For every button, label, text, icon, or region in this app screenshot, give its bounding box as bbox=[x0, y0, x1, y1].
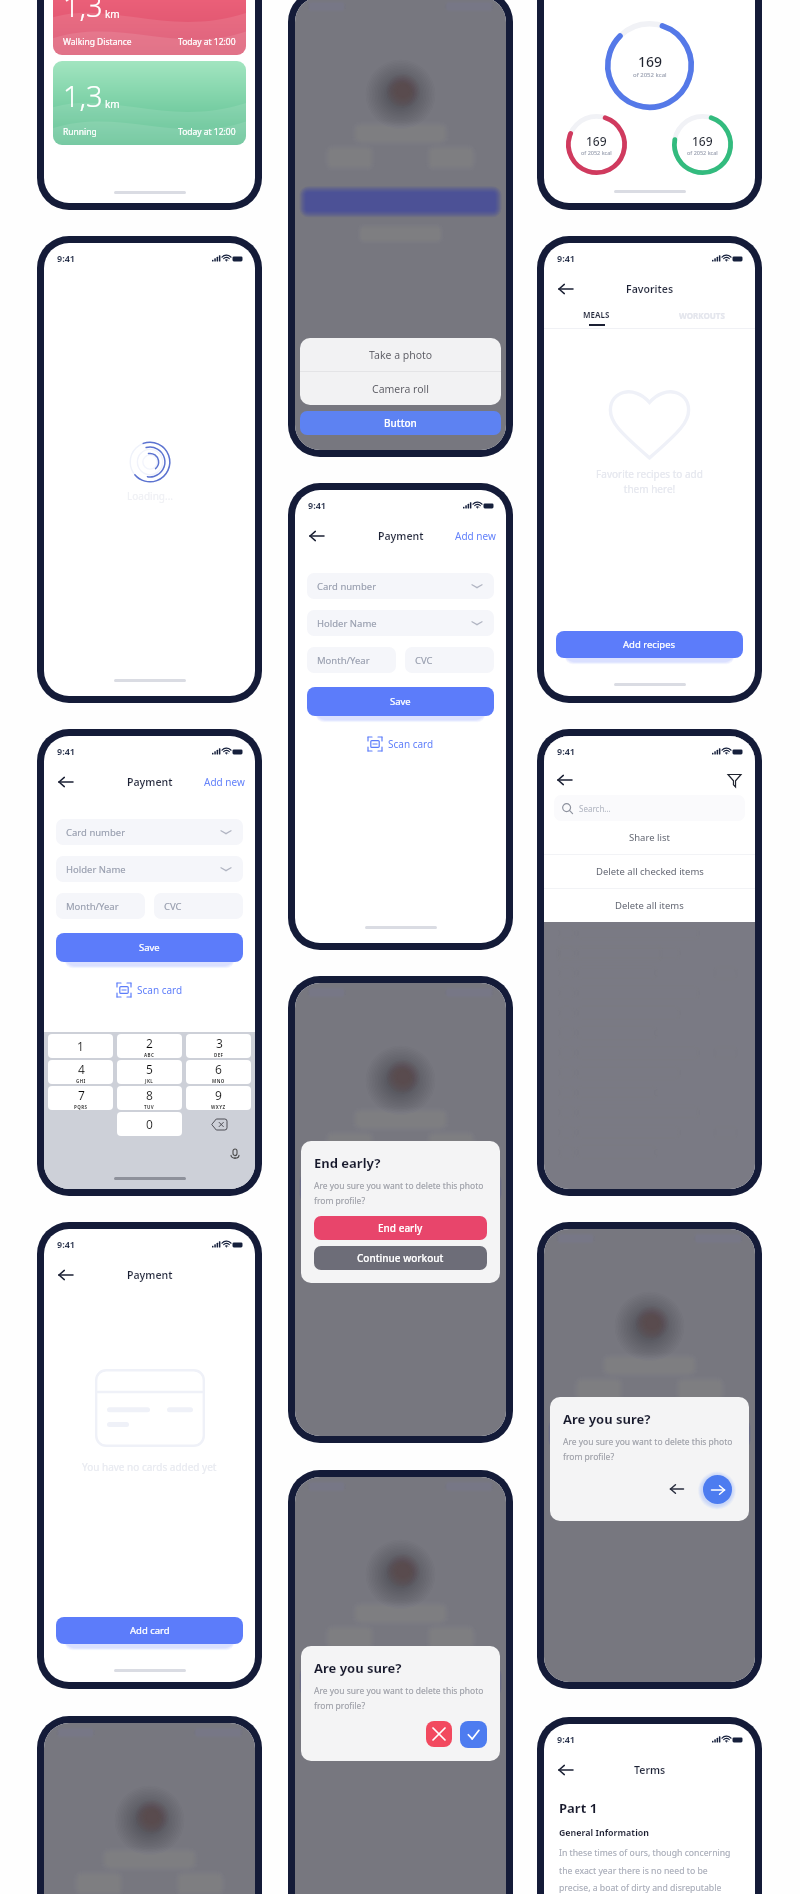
button[interactable]: 8 bbox=[117, 1086, 182, 1110]
button[interactable]: Save bbox=[307, 687, 494, 716]
staticText: 9:41 bbox=[308, 499, 326, 511]
button[interactable]: Back bbox=[554, 277, 578, 301]
button[interactable]: Add new bbox=[455, 529, 496, 543]
staticText: Card number bbox=[66, 826, 126, 839]
staticText: ABC bbox=[144, 1052, 155, 1058]
button[interactable]: Holder Name bbox=[56, 856, 243, 882]
staticText: CVC bbox=[164, 900, 182, 913]
button[interactable]: 1 bbox=[48, 1034, 113, 1058]
staticText: End early bbox=[378, 1221, 423, 1235]
staticText: Are you sure? bbox=[314, 1659, 402, 1677]
button[interactable]: Cancel bbox=[426, 1721, 452, 1747]
staticText: Card number bbox=[317, 580, 377, 593]
button[interactable]: WORKOUTS bbox=[649, 306, 755, 328]
staticText: General Information bbox=[559, 1827, 650, 1839]
button[interactable]: Microphone bbox=[227, 1146, 243, 1162]
button[interactable]: Back bbox=[664, 1476, 690, 1502]
button[interactable]: Scan card bbox=[307, 735, 494, 752]
button[interactable]: 4 bbox=[48, 1060, 113, 1084]
button[interactable]: Add recipes bbox=[556, 631, 743, 658]
staticText: GHI bbox=[76, 1078, 86, 1084]
staticText: TUV bbox=[144, 1104, 155, 1110]
button[interactable]: 1,3 bbox=[53, 0, 246, 55]
button[interactable]: Back bbox=[305, 524, 329, 548]
button[interactable]: Card number bbox=[56, 819, 243, 845]
button[interactable]: 0 bbox=[117, 1112, 182, 1136]
staticText: Scan card bbox=[137, 983, 183, 997]
button[interactable]: Month/Year bbox=[56, 893, 145, 919]
staticText: Holder Name bbox=[66, 863, 126, 876]
button[interactable]: Next bbox=[703, 1475, 732, 1504]
staticText: 1,3 bbox=[63, 0, 103, 25]
button[interactable]: 6 bbox=[186, 1060, 251, 1084]
button[interactable]: Camera roll bbox=[300, 372, 501, 405]
button[interactable]: Continue workout bbox=[314, 1246, 487, 1270]
staticText: Camera roll bbox=[372, 382, 429, 396]
staticText: Add card bbox=[130, 1624, 170, 1637]
button[interactable]: 5 bbox=[117, 1060, 182, 1084]
button[interactable]: Month/Year bbox=[307, 647, 396, 673]
staticText: Today at 12:00 bbox=[178, 36, 236, 48]
staticText: 0 bbox=[146, 1116, 153, 1132]
button[interactable]: 7 bbox=[48, 1086, 113, 1110]
staticText: MNO bbox=[212, 1078, 225, 1084]
staticText: 5 bbox=[146, 1061, 153, 1077]
button[interactable]: 1,3 bbox=[53, 61, 246, 145]
staticText: Share list bbox=[629, 831, 670, 844]
staticText: 9 bbox=[215, 1087, 222, 1103]
button[interactable]: Filter bbox=[723, 769, 745, 791]
button[interactable]: Scan card bbox=[56, 981, 243, 998]
button[interactable]: CVC bbox=[405, 647, 494, 673]
staticText: Add new bbox=[455, 529, 496, 543]
button[interactable]: Share list bbox=[544, 821, 755, 854]
button[interactable]: Back bbox=[554, 1758, 578, 1782]
staticText: WORKOUTS bbox=[679, 310, 725, 321]
button[interactable]: 3 bbox=[186, 1034, 251, 1058]
staticText: 9:41 bbox=[57, 1238, 75, 1250]
staticText: km bbox=[105, 7, 120, 21]
button[interactable]: Add card bbox=[56, 1617, 243, 1644]
staticText: Payment bbox=[378, 529, 424, 543]
button[interactable]: Delete all checked items bbox=[544, 855, 755, 888]
button[interactable]: Add new bbox=[204, 775, 245, 789]
button[interactable]: 2 bbox=[117, 1034, 182, 1058]
button[interactable]: Search... bbox=[554, 795, 745, 821]
button[interactable]: Back bbox=[554, 769, 576, 791]
staticText: DEF bbox=[214, 1052, 224, 1058]
staticText: You have no cards added yet bbox=[82, 1460, 217, 1474]
staticText: Month/Year bbox=[317, 654, 370, 667]
staticText: Take a photo bbox=[369, 348, 433, 362]
staticText: Favorites bbox=[626, 282, 674, 296]
staticText: Are you sure you want to delete this pho… bbox=[314, 1180, 487, 1206]
staticText: 9:41 bbox=[57, 252, 75, 264]
button[interactable]: Backspace bbox=[184, 1112, 253, 1136]
staticText: Search... bbox=[579, 803, 611, 814]
staticText: 1,3 bbox=[63, 76, 103, 115]
staticText: of 2052 kcal bbox=[581, 149, 612, 156]
button[interactable]: Holder Name bbox=[307, 610, 494, 636]
button[interactable]: 9 bbox=[186, 1086, 251, 1110]
staticText: Holder Name bbox=[317, 617, 377, 630]
staticText: Button bbox=[384, 416, 417, 430]
staticText: km bbox=[105, 97, 120, 111]
staticText: Terms bbox=[634, 1763, 666, 1777]
button[interactable]: Delete all items bbox=[544, 889, 755, 922]
button[interactable]: MEALS bbox=[544, 306, 649, 328]
button[interactable]: Take a photo bbox=[300, 338, 501, 371]
button[interactable]: Confirm bbox=[460, 1721, 487, 1748]
button[interactable]: Back bbox=[54, 770, 78, 794]
button[interactable]: Card number bbox=[307, 573, 494, 599]
button[interactable]: CVC bbox=[154, 893, 243, 919]
button[interactable]: Button bbox=[300, 411, 501, 435]
staticText: 9:41 bbox=[557, 745, 575, 757]
staticText: MEALS bbox=[583, 309, 610, 320]
button[interactable]: End early bbox=[314, 1216, 487, 1240]
button[interactable]: Save bbox=[56, 933, 243, 962]
staticText: 169 bbox=[692, 133, 713, 149]
staticText: End early? bbox=[314, 1154, 381, 1172]
staticText: PQRS bbox=[74, 1104, 88, 1110]
staticText: Save bbox=[139, 941, 160, 954]
staticText: 2 bbox=[146, 1035, 153, 1051]
button[interactable]: Back bbox=[54, 1263, 78, 1287]
staticText: Part 1 bbox=[559, 1799, 598, 1817]
